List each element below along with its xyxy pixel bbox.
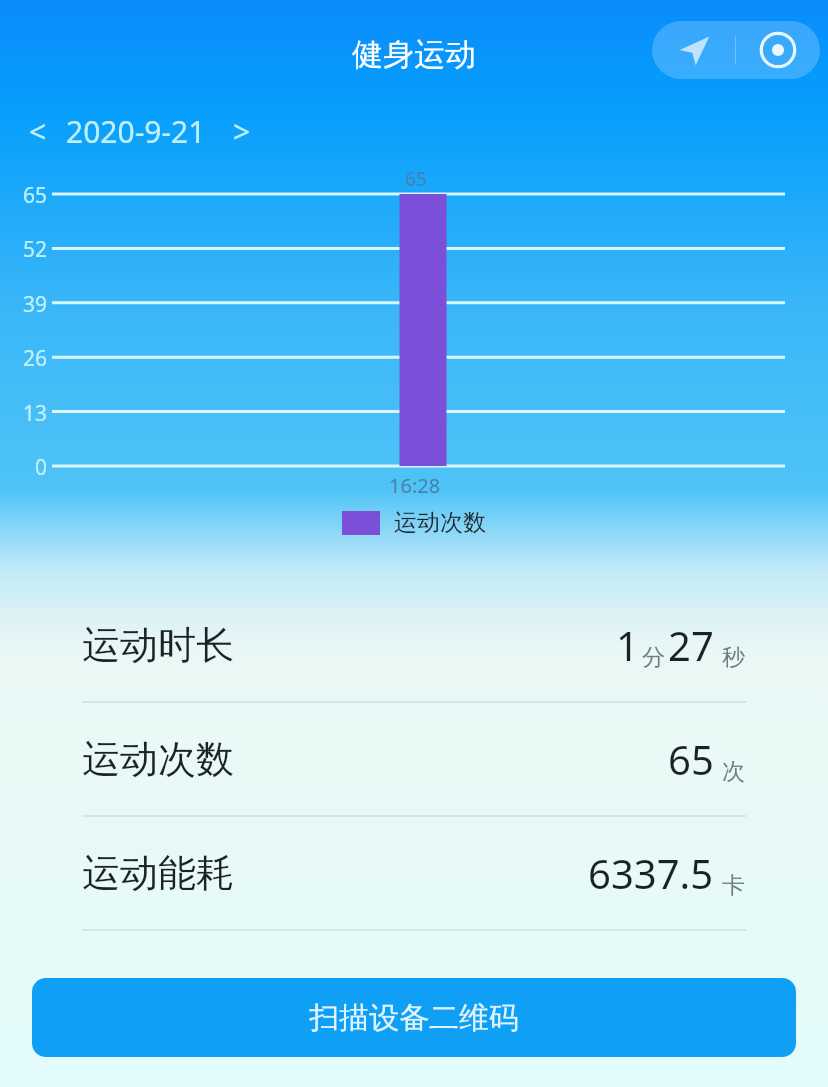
staticText: 运动时长 bbox=[82, 621, 234, 669]
button[interactable]: 运动能耗 bbox=[0, 817, 828, 929]
staticText: 26 bbox=[23, 344, 48, 373]
staticText: 65 bbox=[405, 166, 427, 192]
button[interactable]: Navigate bbox=[652, 21, 735, 79]
staticText: 运动次数 bbox=[82, 735, 234, 783]
staticText: 扫描设备二维码 bbox=[309, 999, 519, 1037]
button[interactable]: 运动次数 bbox=[0, 703, 828, 815]
staticText: 27 bbox=[668, 618, 714, 672]
staticText: 次 bbox=[722, 757, 745, 786]
staticText: 65 bbox=[23, 181, 48, 210]
staticText: 52 bbox=[23, 235, 48, 264]
button[interactable]: Record bbox=[736, 21, 820, 79]
staticText: 6337.5 bbox=[588, 846, 714, 900]
staticText: 运动次数 bbox=[394, 508, 486, 537]
staticText: 1 bbox=[616, 618, 639, 672]
staticText: 39 bbox=[23, 290, 48, 319]
button[interactable]: 运动时长 bbox=[0, 589, 828, 701]
staticText: > bbox=[233, 111, 251, 152]
staticText: 卡 bbox=[722, 871, 745, 900]
staticText: 秒 bbox=[722, 643, 745, 672]
staticText: 0 bbox=[35, 453, 48, 482]
button[interactable]: Previous day bbox=[16, 109, 60, 153]
button[interactable]: Next day bbox=[220, 109, 264, 153]
staticText: 65 bbox=[668, 732, 714, 786]
staticText: 13 bbox=[23, 399, 48, 428]
staticText: 16:28 bbox=[389, 472, 441, 499]
button[interactable]: 扫描设备二维码 bbox=[32, 978, 796, 1057]
staticText: 分 bbox=[642, 643, 665, 672]
staticText: 健身运动 bbox=[352, 35, 476, 74]
staticText: 2020-9-21 bbox=[66, 111, 206, 152]
staticText: < bbox=[29, 111, 47, 152]
staticText: 运动能耗 bbox=[82, 849, 234, 897]
